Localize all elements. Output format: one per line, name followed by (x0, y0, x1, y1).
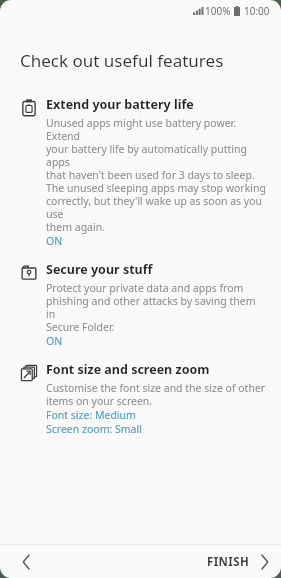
staticText: Unused apps might use battery power. Ext… (46, 116, 267, 234)
button[interactable]: Screen zoom: Small (46, 422, 142, 436)
button[interactable]: Back (12, 548, 40, 576)
button[interactable]: Secure your stuff (0, 261, 281, 348)
staticText: Check out useful features (20, 49, 224, 72)
staticText: 10:00 (244, 4, 270, 18)
staticText: Customise the font size and the size of … (46, 381, 266, 408)
staticText: 100% (205, 4, 231, 18)
staticText: Protect your private data and apps from … (46, 281, 267, 334)
staticText: Extend your battery life (46, 96, 194, 113)
button[interactable]: ON (46, 234, 63, 248)
staticText: Font size and screen zoom (46, 361, 210, 378)
button[interactable]: FINISH (207, 554, 269, 570)
button[interactable]: Extend your battery life (0, 96, 281, 248)
button[interactable]: ON (46, 334, 63, 348)
button[interactable]: Font size and screen zoom (0, 361, 281, 436)
button[interactable]: Font size: Medium (46, 408, 136, 422)
staticText: Secure your stuff (46, 261, 153, 278)
staticText: FINISH (207, 554, 250, 570)
